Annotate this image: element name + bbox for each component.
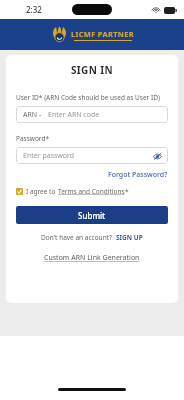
staticText: Terms and Conditions <box>58 187 125 196</box>
staticText: Submit <box>78 210 106 221</box>
staticText: LICMF PARTNER <box>71 29 134 39</box>
staticText: SIGN UP <box>116 233 143 242</box>
staticText: Custom ARN Link Generation <box>44 253 140 263</box>
staticText: I agree to <box>26 187 58 196</box>
button[interactable]: Submit <box>16 206 168 224</box>
button[interactable]: I agree to <box>16 187 129 196</box>
staticText: SIGN IN <box>16 63 168 77</box>
staticText: * <box>125 187 129 196</box>
button[interactable]: Show password <box>152 151 162 161</box>
staticText: Password* <box>16 134 49 143</box>
staticText: Enter ARN code <box>48 110 100 120</box>
staticText: 2:32 <box>26 4 42 15</box>
staticText: Enter password <box>23 151 75 161</box>
staticText: Don't have an account? <box>41 233 116 242</box>
button[interactable]: Enter password <box>16 147 168 164</box>
staticText: ARN - <box>23 110 42 120</box>
staticText: User ID* (ARN Code should be used as Use… <box>16 93 160 102</box>
button[interactable]: SIGN UP <box>116 233 143 242</box>
button[interactable]: Forgot Password? <box>108 170 168 180</box>
button[interactable]: ARN - <box>16 106 168 123</box>
button[interactable]: Custom ARN Link Generation <box>44 253 140 263</box>
